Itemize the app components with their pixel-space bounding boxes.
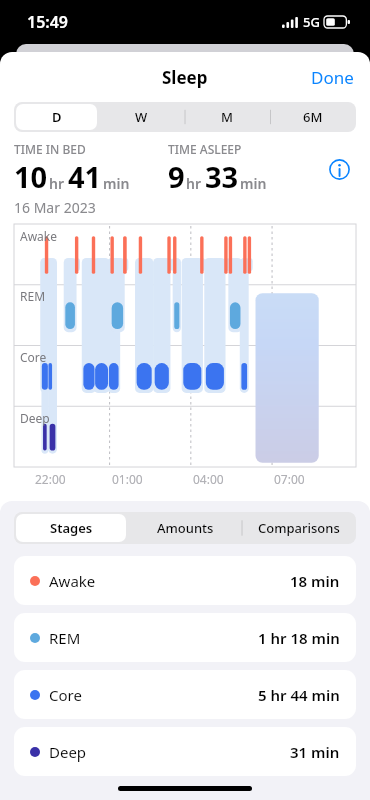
button[interactable]: Comparisons xyxy=(244,514,354,542)
staticText: 07:00 xyxy=(274,471,305,487)
button[interactable]: W xyxy=(101,104,182,130)
staticText: REM xyxy=(20,288,46,304)
staticText: min xyxy=(103,174,130,193)
staticText: W xyxy=(135,108,148,126)
staticText: Done xyxy=(311,66,354,89)
staticText: TIME IN BED xyxy=(14,141,86,157)
staticText: Core xyxy=(49,685,82,705)
staticText: 6M xyxy=(303,108,323,126)
button[interactable]: D xyxy=(16,104,97,130)
staticText: 31 min xyxy=(290,742,340,762)
button[interactable]: Sleep stages chart xyxy=(14,224,356,491)
staticText: Sleep xyxy=(162,66,208,89)
button[interactable]: Deep xyxy=(14,727,356,776)
staticText: 5 hr 44 min xyxy=(258,685,340,705)
button[interactable]: M xyxy=(186,104,268,130)
staticText: TIME ASLEEP xyxy=(168,141,242,157)
staticText: 9 xyxy=(168,157,185,196)
staticText: 15:49 xyxy=(27,11,69,33)
button[interactable]: Stages xyxy=(16,514,126,542)
button[interactable]: Awake xyxy=(14,556,356,605)
button[interactable]: REM xyxy=(14,613,356,662)
staticText: 22:00 xyxy=(35,471,66,487)
staticText: 33 xyxy=(205,157,239,196)
staticText: 16 Mar 2023 xyxy=(14,198,96,217)
staticText: 18 min xyxy=(290,571,340,591)
button[interactable]: Done xyxy=(295,56,370,99)
staticText: Awake xyxy=(49,571,96,591)
staticText: 1 hr 18 min xyxy=(258,628,340,648)
button[interactable]: 6M xyxy=(272,104,354,130)
staticText: Deep xyxy=(49,742,87,762)
staticText: 41 xyxy=(68,157,102,196)
staticText: hr xyxy=(186,174,202,193)
staticText: Core xyxy=(20,349,47,365)
staticText: Deep xyxy=(20,410,50,426)
staticText: Stages xyxy=(50,519,93,537)
staticText: Amounts xyxy=(157,519,214,537)
staticText: M xyxy=(221,108,233,126)
staticText: min xyxy=(240,174,267,193)
staticText: D xyxy=(52,108,62,126)
staticText: 5G xyxy=(303,13,320,31)
staticText: Awake xyxy=(20,228,58,244)
button[interactable]: Information xyxy=(322,152,356,186)
staticText: hr xyxy=(49,174,65,193)
staticText: 10 xyxy=(14,157,48,196)
staticText: 04:00 xyxy=(193,471,224,487)
staticText: Comparisons xyxy=(258,519,340,537)
button[interactable]: Core xyxy=(14,670,356,719)
button[interactable]: Amounts xyxy=(130,514,240,542)
staticText: REM xyxy=(49,628,81,648)
staticText: 01:00 xyxy=(112,471,143,487)
